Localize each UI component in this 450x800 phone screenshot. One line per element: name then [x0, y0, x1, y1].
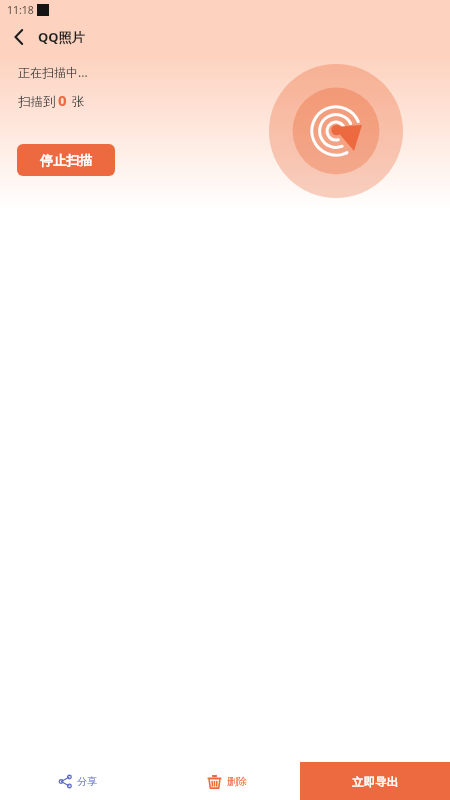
button[interactable]: 停止扫描	[17, 144, 115, 176]
staticText: QQ照片	[38, 28, 85, 46]
staticText: 11:18	[7, 3, 34, 17]
button[interactable]: Back	[4, 22, 34, 52]
staticText: 0	[58, 90, 67, 110]
button[interactable]: 删除	[177, 762, 277, 800]
staticText: 停止扫描	[40, 152, 92, 168]
staticText: 立即导出	[352, 775, 398, 789]
staticText: 删除	[227, 775, 247, 788]
staticText: 正在扫描中...	[18, 64, 88, 80]
staticText: 张	[72, 94, 85, 110]
staticText: 分享	[77, 775, 97, 788]
button[interactable]: 分享	[29, 762, 129, 800]
staticText: 扫描到	[18, 94, 56, 110]
button[interactable]: 立即导出	[300, 762, 450, 800]
